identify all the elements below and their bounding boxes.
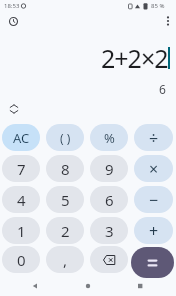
button[interactable]: − xyxy=(134,186,173,213)
button[interactable] xyxy=(6,101,21,116)
staticText: 6 xyxy=(159,81,166,97)
button[interactable]: 6 xyxy=(90,186,128,213)
staticText: 4 xyxy=(17,190,26,210)
button[interactable]: ( ) xyxy=(46,124,84,151)
staticText: − xyxy=(149,189,159,211)
button[interactable] xyxy=(5,13,22,30)
button[interactable]: 4 xyxy=(2,186,40,213)
staticText: + xyxy=(149,220,159,242)
staticText: 85 % xyxy=(151,2,165,10)
button[interactable]: 7 xyxy=(2,155,40,182)
button[interactable]: 0 xyxy=(2,246,40,273)
button[interactable]: % xyxy=(90,124,128,151)
staticText: 2 xyxy=(61,221,70,241)
button[interactable]: 3 xyxy=(90,217,128,244)
staticText: 6 xyxy=(105,190,114,210)
staticText: ÷ xyxy=(149,127,159,149)
staticText: 0 xyxy=(17,250,26,270)
staticText: 1 xyxy=(17,221,26,241)
button[interactable]: 2 xyxy=(46,217,84,244)
button[interactable]: AC xyxy=(2,124,40,151)
button[interactable] xyxy=(131,247,174,278)
button[interactable] xyxy=(90,246,128,273)
button[interactable]: 9 xyxy=(90,155,128,182)
staticText: 8 xyxy=(61,159,70,179)
staticText: 3 xyxy=(105,221,114,241)
button[interactable]: ÷ xyxy=(134,124,173,151)
staticText: AC xyxy=(13,129,30,147)
button[interactable]: 1 xyxy=(2,217,40,244)
staticText: 5 xyxy=(61,190,70,210)
staticText: 18:53 xyxy=(4,2,20,10)
staticText: 7 xyxy=(17,159,26,179)
button[interactable]: 5 xyxy=(46,186,84,213)
button[interactable]: , xyxy=(46,246,84,273)
staticText: , xyxy=(63,250,68,270)
button[interactable]: + xyxy=(134,217,173,244)
staticText: ( ) xyxy=(60,130,71,146)
button[interactable] xyxy=(160,13,176,29)
staticText: × xyxy=(149,158,159,180)
staticText: 9 xyxy=(105,159,114,179)
button[interactable]: 8 xyxy=(46,155,84,182)
staticText: % xyxy=(104,129,115,147)
button[interactable]: × xyxy=(134,155,173,182)
staticText: 2+2×2 xyxy=(101,41,168,75)
